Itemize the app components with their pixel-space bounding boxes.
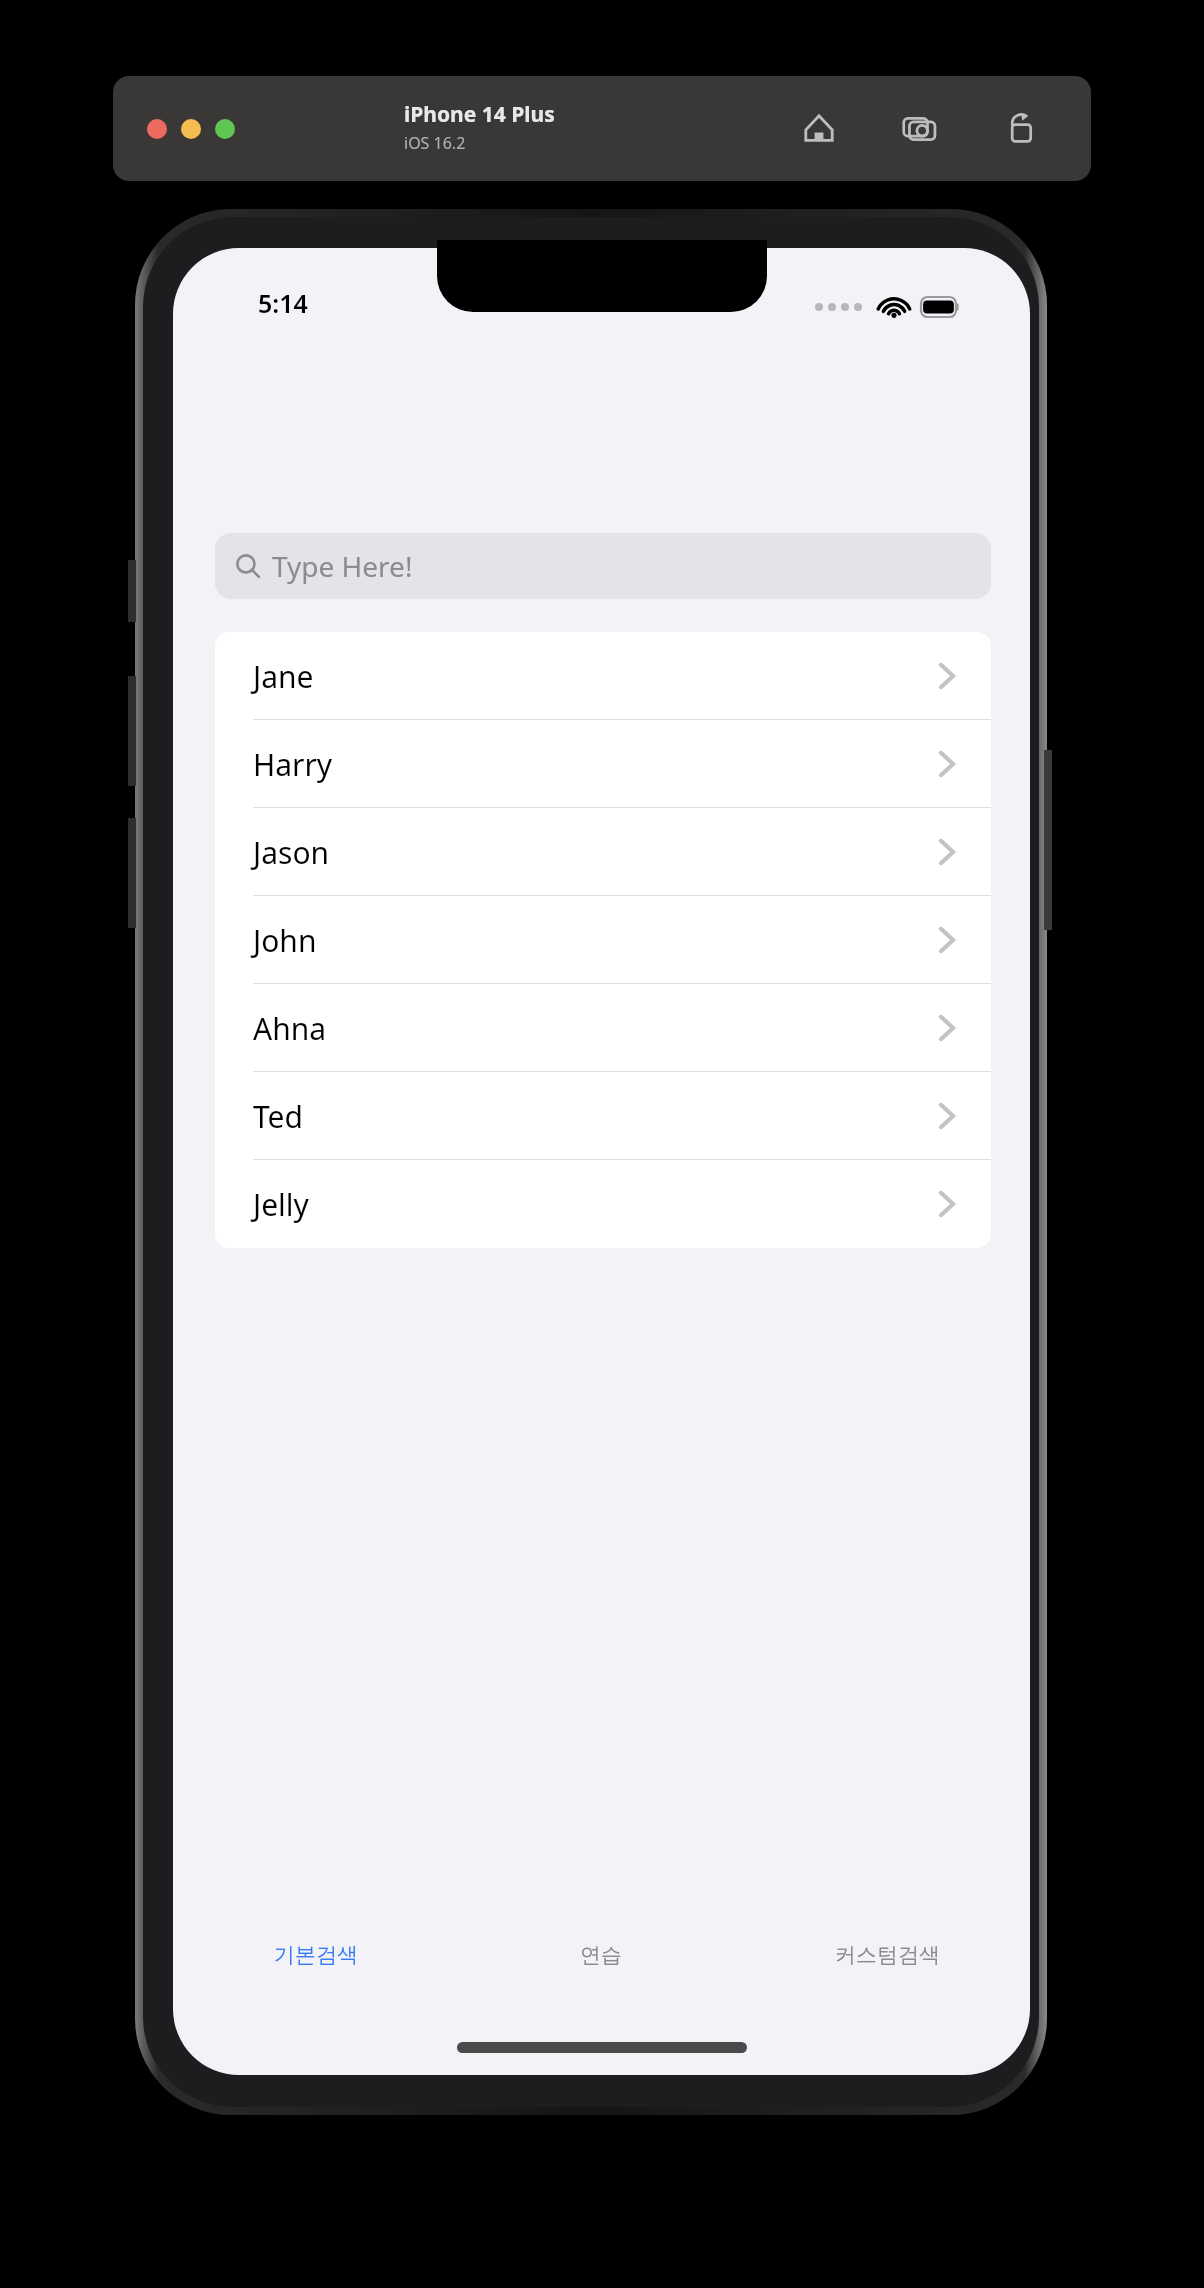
button[interactable]: Home <box>797 107 841 151</box>
button[interactable]: Jane <box>215 632 991 720</box>
staticText: 연습 <box>580 1942 622 1968</box>
staticText: 커스텀검색 <box>835 1942 940 1968</box>
button[interactable]: John <box>215 896 991 984</box>
staticText: 기본검색 <box>274 1942 358 1968</box>
button[interactable] <box>147 119 167 139</box>
staticText: Jelly <box>253 1184 309 1225</box>
staticText: Ahna <box>253 1008 327 1049</box>
button[interactable]: Jason <box>215 808 991 896</box>
staticText: iOS 16.2 <box>404 132 466 154</box>
button[interactable]: Ahna <box>215 984 991 1072</box>
staticText: Type Here! <box>272 547 413 585</box>
button[interactable]: Harry <box>215 720 991 808</box>
button[interactable]: Ted <box>215 1072 991 1160</box>
button[interactable]: 연습 <box>458 1920 744 1990</box>
staticText: Harry <box>253 744 333 785</box>
staticText: Ted <box>253 1096 303 1137</box>
button[interactable]: Type Here! <box>215 533 991 599</box>
button[interactable]: Rotate <box>999 107 1043 151</box>
button[interactable]: 커스텀검색 <box>744 1920 1030 1990</box>
button[interactable]: Jelly <box>215 1160 991 1248</box>
button[interactable]: 기본검색 <box>173 1920 458 1990</box>
staticText: Contacts! <box>215 673 487 752</box>
staticText: John <box>253 920 317 961</box>
button[interactable]: Screenshot <box>898 107 942 151</box>
staticText: iPhone 14 Plus <box>404 100 555 129</box>
button[interactable] <box>181 119 201 139</box>
staticText: Jane <box>253 656 314 697</box>
staticText: 5:14 <box>258 286 308 320</box>
staticText: Jason <box>253 832 330 873</box>
button[interactable] <box>215 119 235 139</box>
